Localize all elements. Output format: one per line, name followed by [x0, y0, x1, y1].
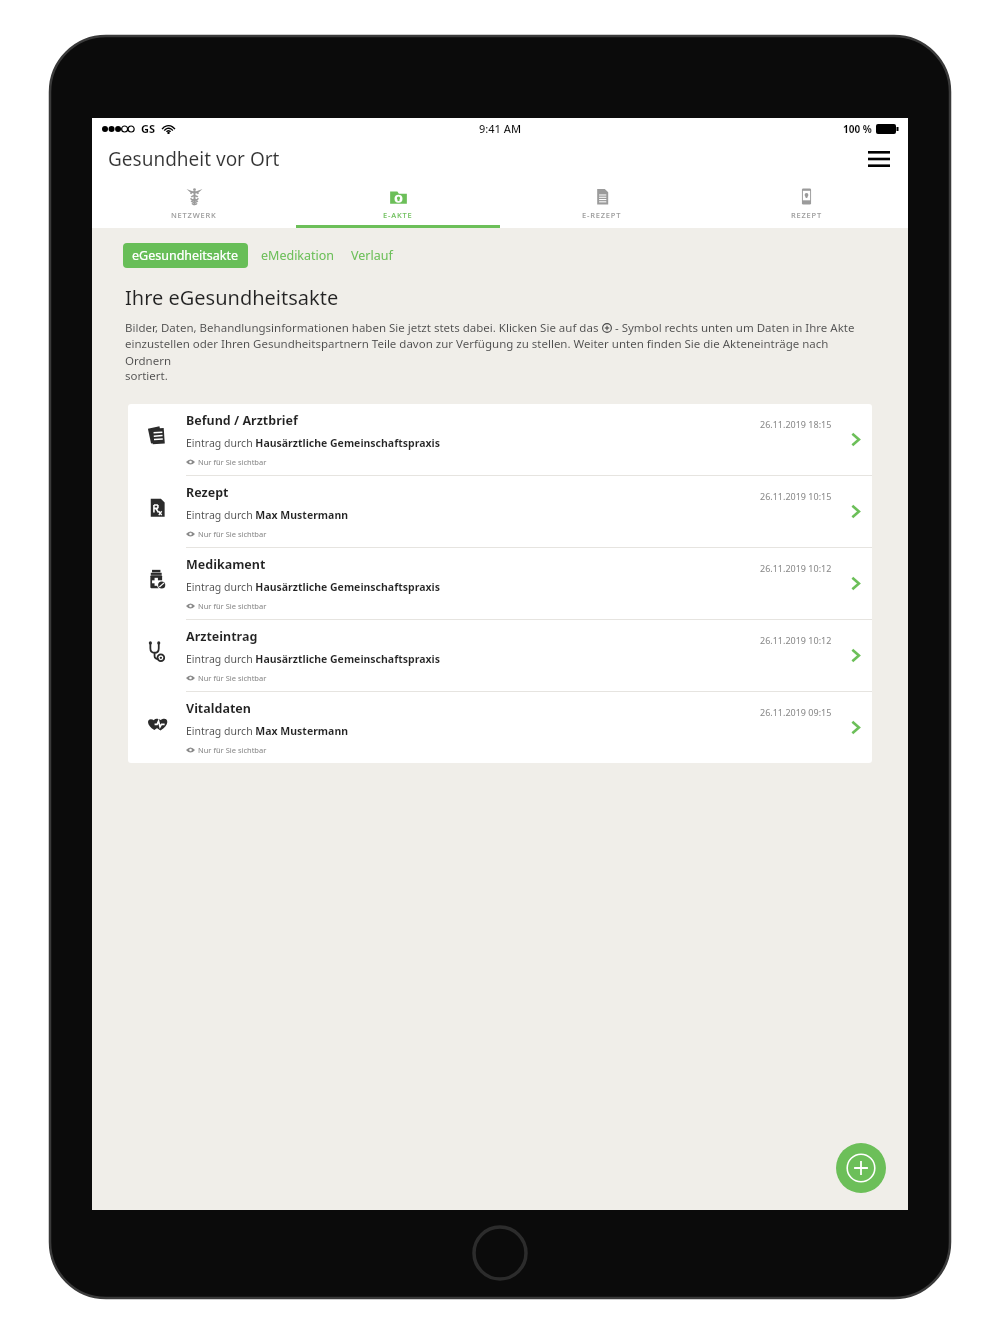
- staticText: Eintrag durch Max Mustermann: [186, 724, 349, 738]
- staticText: eMedikation: [261, 247, 335, 264]
- button[interactable]: NETZWERK: [92, 179, 296, 228]
- staticText: Gesundheit vor Ort: [108, 146, 280, 172]
- button[interactable]: REZEPT: [704, 179, 908, 228]
- staticText: 9:41 AM: [479, 121, 522, 136]
- staticText: einzustellen oder Ihren Gesundheitspartn…: [125, 336, 875, 368]
- staticText: Befund / Arztbrief: [186, 412, 298, 429]
- staticText: eGesundheitsakte: [132, 247, 239, 264]
- button[interactable]: Verlauf: [348, 243, 396, 268]
- button[interactable]: Menü: [864, 144, 894, 174]
- button[interactable]: Medikament: [128, 548, 872, 619]
- staticText: NETZWERK: [171, 210, 217, 220]
- staticText: Rezept: [186, 484, 229, 501]
- staticText: 100 %: [843, 122, 872, 136]
- staticText: Nur für Sie sichtbar: [198, 601, 267, 611]
- staticText: Eintrag durch Hausärztliche Gemeinschaft…: [186, 652, 440, 666]
- staticText: Nur für Sie sichtbar: [198, 529, 267, 539]
- staticText: 26.11.2019 18:15: [760, 418, 832, 430]
- button[interactable]: eMedikation: [258, 243, 338, 268]
- staticText: Nur für Sie sichtbar: [198, 745, 267, 755]
- staticText: Medikament: [186, 556, 266, 573]
- staticText: GS: [141, 121, 156, 136]
- staticText: Bilder, Daten, Behandlungsinformationen …: [125, 320, 602, 336]
- staticText: Eintrag durch Max Mustermann: [186, 508, 349, 522]
- button[interactable]: Befund / Arztbrief: [128, 404, 872, 475]
- staticText: Eintrag durch Hausärztliche Gemeinschaft…: [186, 580, 440, 594]
- staticText: Eintrag durch Hausärztliche Gemeinschaft…: [186, 436, 440, 450]
- staticText: Nur für Sie sichtbar: [198, 457, 267, 467]
- staticText: 26.11.2019 10:15: [760, 490, 832, 502]
- staticText: Arzteintrag: [186, 628, 258, 645]
- button[interactable]: Arzteintrag: [128, 620, 872, 691]
- staticText: 26.11.2019 10:12: [760, 562, 832, 574]
- staticText: Ihre eGesundheitsakte: [125, 284, 339, 311]
- button[interactable]: Rezept: [128, 476, 872, 547]
- button[interactable]: Vitaldaten: [128, 692, 872, 763]
- staticText: 26.11.2019 10:12: [760, 634, 832, 646]
- staticText: 26.11.2019 09:15: [760, 706, 832, 718]
- staticText: E-REZEPT: [582, 210, 622, 220]
- staticText: sortiert.: [125, 368, 168, 384]
- staticText: E-AKTE: [383, 210, 413, 220]
- staticText: Nur für Sie sichtbar: [198, 673, 267, 683]
- button[interactable]: Hinzufügen: [836, 1143, 886, 1193]
- staticText: Vitaldaten: [186, 700, 251, 717]
- staticText: Verlauf: [351, 247, 393, 264]
- button[interactable]: E-REZEPT: [500, 179, 704, 228]
- button[interactable]: E-AKTE: [296, 179, 500, 228]
- staticText: REZEPT: [791, 210, 822, 220]
- button[interactable]: eGesundheitsakte: [123, 243, 248, 268]
- staticText: - Symbol rechts unten um Daten in Ihre A…: [612, 320, 855, 336]
